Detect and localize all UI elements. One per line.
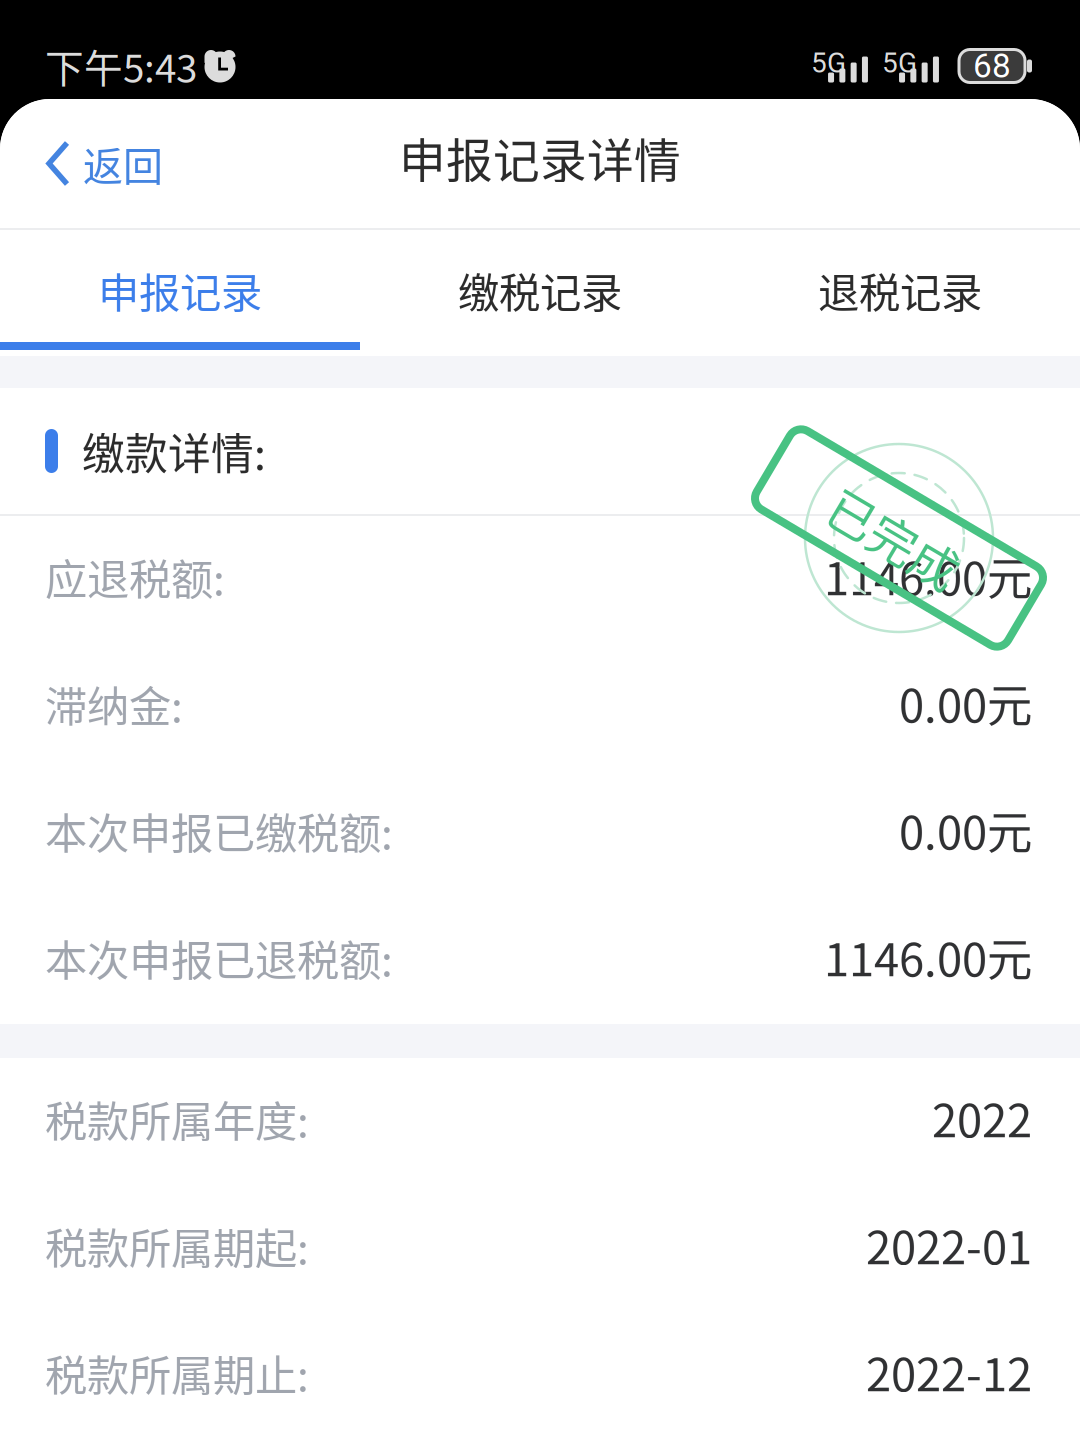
button[interactable]: 缴税记录	[360, 230, 720, 350]
staticText: 1146.00元	[824, 924, 1032, 989]
staticText: 滞纳金:	[45, 673, 183, 734]
staticText: 本次申报已缴税额:	[45, 800, 393, 861]
button[interactable]: 返回	[0, 99, 187, 228]
staticText: 2022-12	[866, 1339, 1032, 1404]
staticText: 2022-01	[866, 1212, 1032, 1277]
staticText: 0.00元	[899, 797, 1032, 862]
staticText: 5G	[882, 46, 917, 79]
staticText: 税款所属期止:	[45, 1342, 309, 1403]
staticText: 申报记录详情	[399, 124, 681, 191]
staticText: 返回	[83, 134, 163, 192]
staticText: 68	[973, 46, 1011, 86]
staticText: 5G	[811, 46, 846, 79]
staticText: 退税记录	[818, 260, 982, 320]
staticText: 本次申报已退税额:	[45, 927, 393, 988]
staticText: 税款所属年度:	[45, 1088, 309, 1149]
staticText: 下午5:43	[45, 38, 197, 94]
staticText: 2022	[932, 1085, 1032, 1150]
button[interactable]: 退税记录	[720, 230, 1080, 350]
staticText: 申报记录	[98, 260, 262, 320]
staticText: 已完成	[823, 505, 967, 575]
staticText: 缴款详情:	[82, 420, 266, 482]
staticText: 缴税记录	[458, 260, 622, 320]
staticText: 0.00元	[899, 670, 1032, 735]
button[interactable]: 申报记录	[0, 230, 360, 350]
staticText: 1146.00元	[824, 543, 1032, 608]
staticText: 税款所属期起:	[45, 1215, 309, 1276]
staticText: 应退税额:	[45, 546, 225, 607]
